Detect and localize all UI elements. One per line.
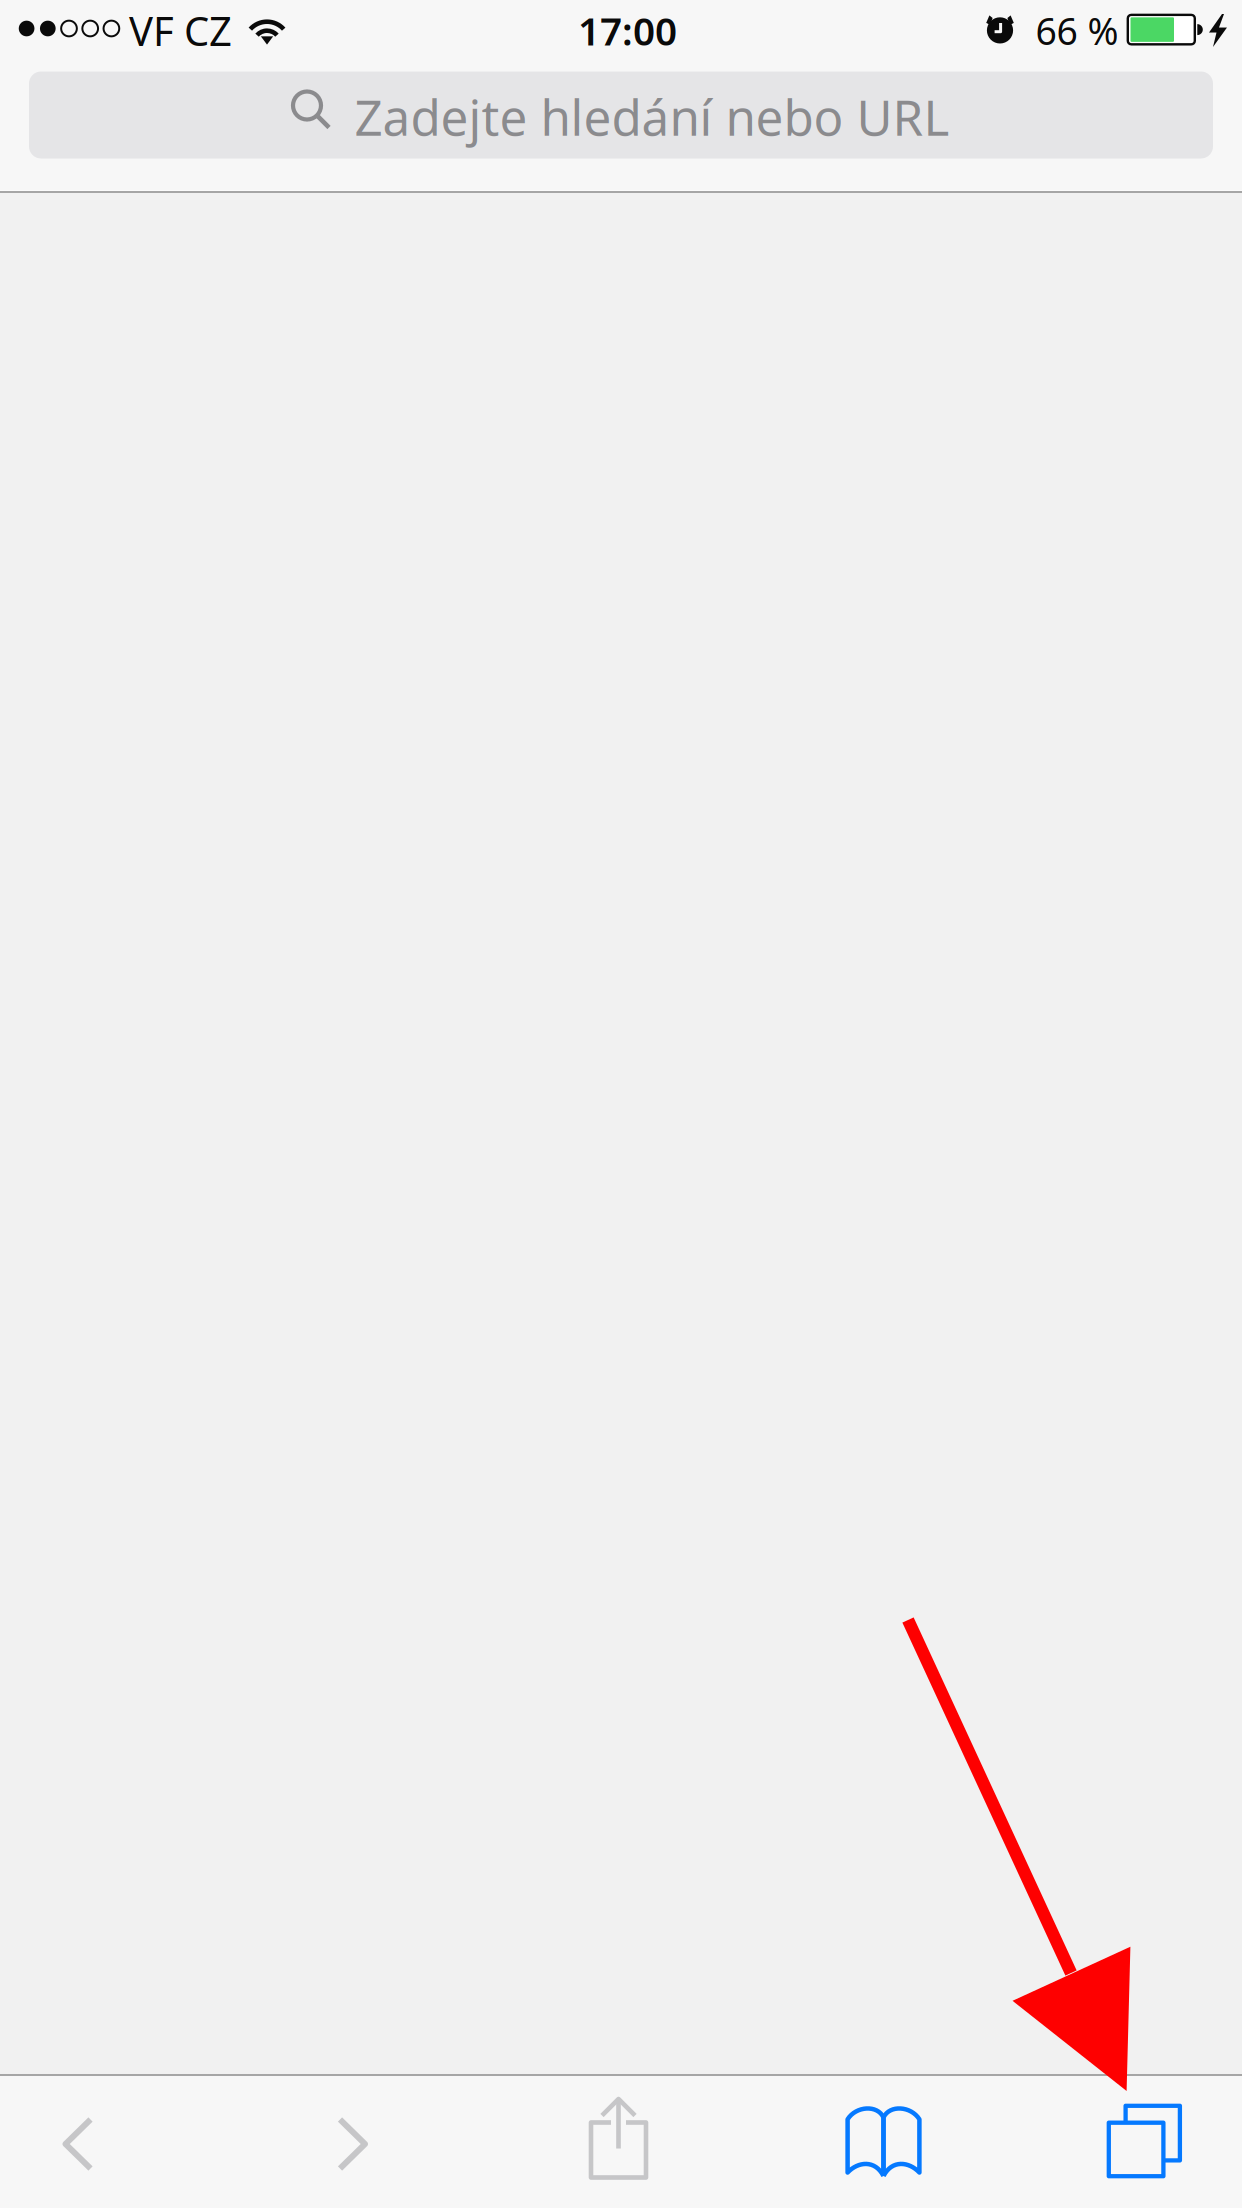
button[interactable]: Zadejte hledání nebo URL (29, 71, 1213, 158)
button[interactable]: Tabs (1069, 2075, 1219, 2207)
button[interactable]: Back (3, 2078, 153, 2208)
staticText: Zadejte hledání nebo URL (354, 84, 949, 149)
button[interactable]: Share (543, 2072, 693, 2204)
button[interactable]: Bookmarks (809, 2075, 959, 2207)
staticText: 17:00 (578, 5, 677, 56)
staticText: VF CZ (129, 4, 232, 57)
staticText: 66 % (1035, 6, 1118, 55)
button[interactable]: Forward (277, 2078, 427, 2208)
